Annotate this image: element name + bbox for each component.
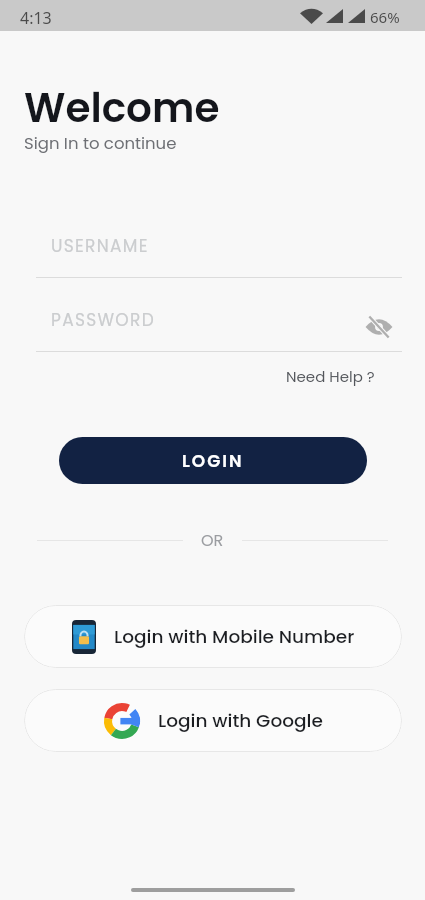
- staticText: Login with Mobile Number: [114, 624, 355, 650]
- staticText: Sign In to continue: [24, 132, 177, 155]
- staticText: OR: [201, 529, 224, 551]
- button[interactable]: LOGIN: [59, 437, 367, 484]
- staticText: PASSWORD: [51, 308, 155, 332]
- button[interactable]: Show password: [364, 312, 394, 342]
- staticText: USERNAME: [51, 234, 149, 258]
- button[interactable]: Need Help ?: [284, 364, 377, 389]
- staticText: LOGIN: [182, 449, 244, 473]
- staticText: 66%: [370, 7, 400, 27]
- button[interactable]: Login with Google: [24, 689, 402, 752]
- staticText: 4:13: [20, 7, 52, 29]
- staticText: Need Help ?: [286, 366, 375, 387]
- staticText: Login with Google: [158, 708, 323, 734]
- staticText: Welcome: [24, 79, 220, 136]
- button[interactable]: Login with Mobile Number: [24, 605, 402, 668]
